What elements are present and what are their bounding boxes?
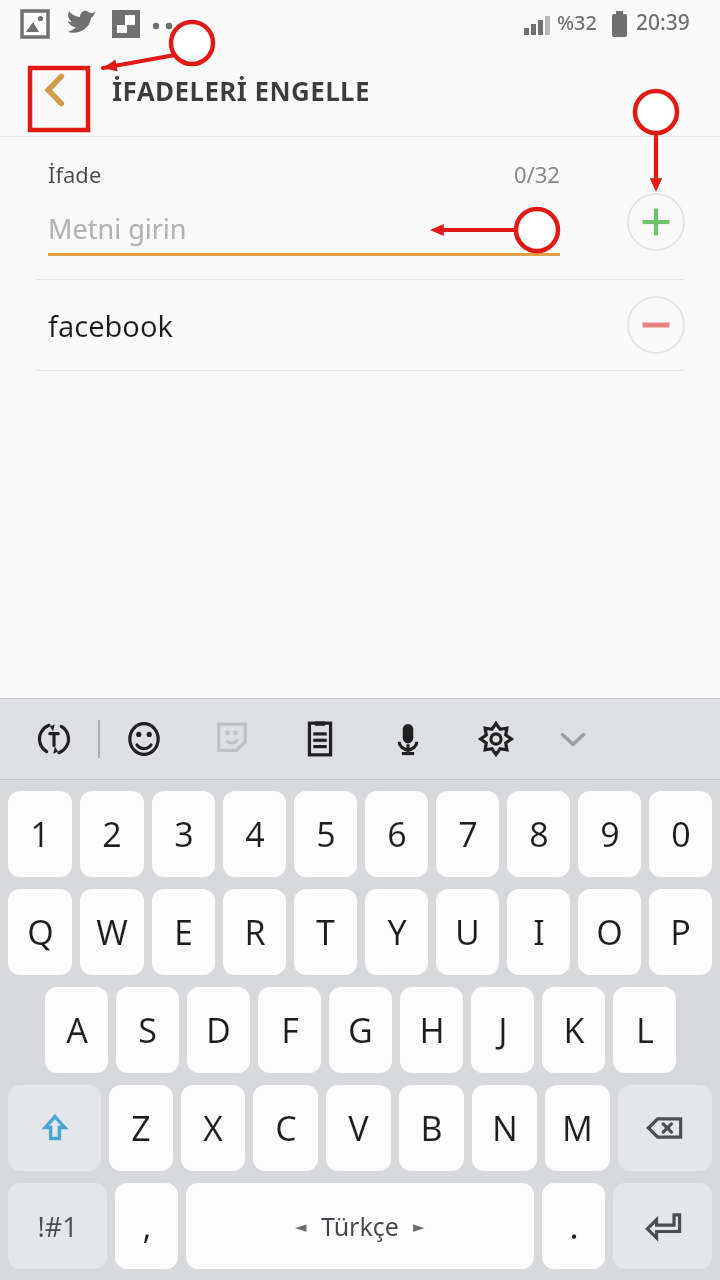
staticText: %32: [557, 9, 597, 36]
button[interactable]: Remove facebook: [627, 296, 685, 354]
staticText: İfade: [48, 159, 102, 189]
staticText: !#1: [37, 1208, 78, 1245]
staticText: J: [498, 1007, 508, 1053]
staticText: C: [275, 1105, 297, 1151]
staticText: X: [203, 1105, 223, 1151]
staticText: N: [492, 1105, 518, 1151]
staticText: B: [420, 1105, 443, 1151]
button[interactable]: !#1: [8, 1183, 107, 1269]
staticText: 9: [600, 811, 620, 857]
staticText: S: [138, 1007, 157, 1053]
staticText: L: [636, 1007, 654, 1053]
button[interactable]: N: [472, 1085, 537, 1171]
staticText: 1: [30, 811, 50, 857]
staticText: .: [569, 1203, 579, 1249]
button[interactable]: Voice input: [364, 698, 452, 780]
button[interactable]: Q: [8, 889, 72, 975]
button[interactable]: X: [181, 1085, 245, 1171]
button[interactable]: O: [578, 889, 641, 975]
button[interactable]: 1: [8, 791, 72, 877]
staticText: Z: [131, 1105, 151, 1151]
button[interactable]: Backspace: [618, 1085, 712, 1171]
button[interactable]: K: [542, 987, 605, 1073]
staticText: H: [419, 1007, 445, 1053]
button[interactable]: R: [223, 889, 286, 975]
button[interactable]: V: [326, 1085, 391, 1171]
button[interactable]: D: [187, 987, 250, 1073]
button[interactable]: E: [152, 889, 215, 975]
button[interactable]: Y: [365, 889, 428, 975]
staticText: O: [596, 909, 623, 955]
staticText: İFADELERİ ENGELLE: [112, 73, 370, 108]
button[interactable]: 0: [649, 791, 712, 877]
button[interactable]: B: [399, 1085, 464, 1171]
staticText: Q: [27, 909, 54, 955]
staticText: 0/32: [514, 159, 560, 189]
button[interactable]: .: [542, 1183, 605, 1269]
button[interactable]: 3: [152, 791, 215, 877]
button[interactable]: Z: [109, 1085, 173, 1171]
button[interactable]: 2: [80, 791, 144, 877]
button[interactable]: facebook: [0, 280, 720, 370]
staticText: 0: [671, 811, 691, 857]
staticText: 6: [387, 811, 407, 857]
button[interactable]: G: [329, 987, 392, 1073]
staticText: 4: [245, 811, 265, 857]
button[interactable]: Stickers: [188, 698, 276, 780]
button[interactable]: F: [258, 987, 321, 1073]
staticText: M: [562, 1105, 593, 1151]
button[interactable]: A: [45, 987, 108, 1073]
button[interactable]: Enter: [613, 1183, 712, 1269]
button[interactable]: 9: [578, 791, 641, 877]
button[interactable]: Translate: [10, 698, 98, 780]
staticText: 8: [529, 811, 549, 857]
staticText: V: [348, 1105, 369, 1151]
staticText: 3: [174, 811, 194, 857]
button[interactable]: ,: [115, 1183, 178, 1269]
button[interactable]: C: [253, 1085, 318, 1171]
staticText: I: [533, 909, 545, 955]
button[interactable]: Emoji: [100, 698, 188, 780]
button[interactable]: Space, Türkçe: [186, 1183, 534, 1269]
button[interactable]: U: [436, 889, 499, 975]
button[interactable]: Metni girin: [48, 207, 560, 249]
staticText: 20:39: [636, 8, 690, 37]
staticText: A: [66, 1007, 88, 1053]
staticText: Y: [387, 909, 407, 955]
button[interactable]: I: [507, 889, 570, 975]
staticText: ,: [142, 1203, 152, 1249]
staticText: D: [206, 1007, 231, 1053]
staticText: ◄: [295, 1218, 307, 1235]
button[interactable]: W: [80, 889, 144, 975]
button[interactable]: 7: [436, 791, 499, 877]
button[interactable]: 6: [365, 791, 428, 877]
button[interactable]: Back: [24, 59, 86, 121]
staticText: G: [348, 1007, 373, 1053]
staticText: U: [455, 909, 480, 955]
staticText: F: [281, 1007, 299, 1053]
button[interactable]: 8: [507, 791, 570, 877]
button[interactable]: 5: [294, 791, 357, 877]
button[interactable]: L: [613, 987, 676, 1073]
staticText: 5: [316, 811, 336, 857]
button[interactable]: P: [649, 889, 712, 975]
staticText: R: [244, 909, 266, 955]
button[interactable]: Add phrase: [627, 193, 685, 251]
button[interactable]: T: [294, 889, 357, 975]
button[interactable]: Hide keyboard: [540, 698, 606, 780]
button[interactable]: M: [545, 1085, 610, 1171]
staticText: E: [174, 909, 193, 955]
button[interactable]: H: [400, 987, 463, 1073]
staticText: Metni girin: [48, 210, 187, 247]
staticText: W: [96, 909, 128, 955]
button[interactable]: J: [471, 987, 534, 1073]
button[interactable]: Shift: [8, 1085, 101, 1171]
staticText: 7: [458, 811, 478, 857]
button[interactable]: 4: [223, 791, 286, 877]
button[interactable]: Keyboard settings: [452, 698, 540, 780]
staticText: ►: [413, 1218, 425, 1235]
staticText: 2: [102, 811, 122, 857]
button[interactable]: Clipboard: [276, 698, 364, 780]
staticText: T: [316, 909, 335, 955]
button[interactable]: S: [116, 987, 179, 1073]
